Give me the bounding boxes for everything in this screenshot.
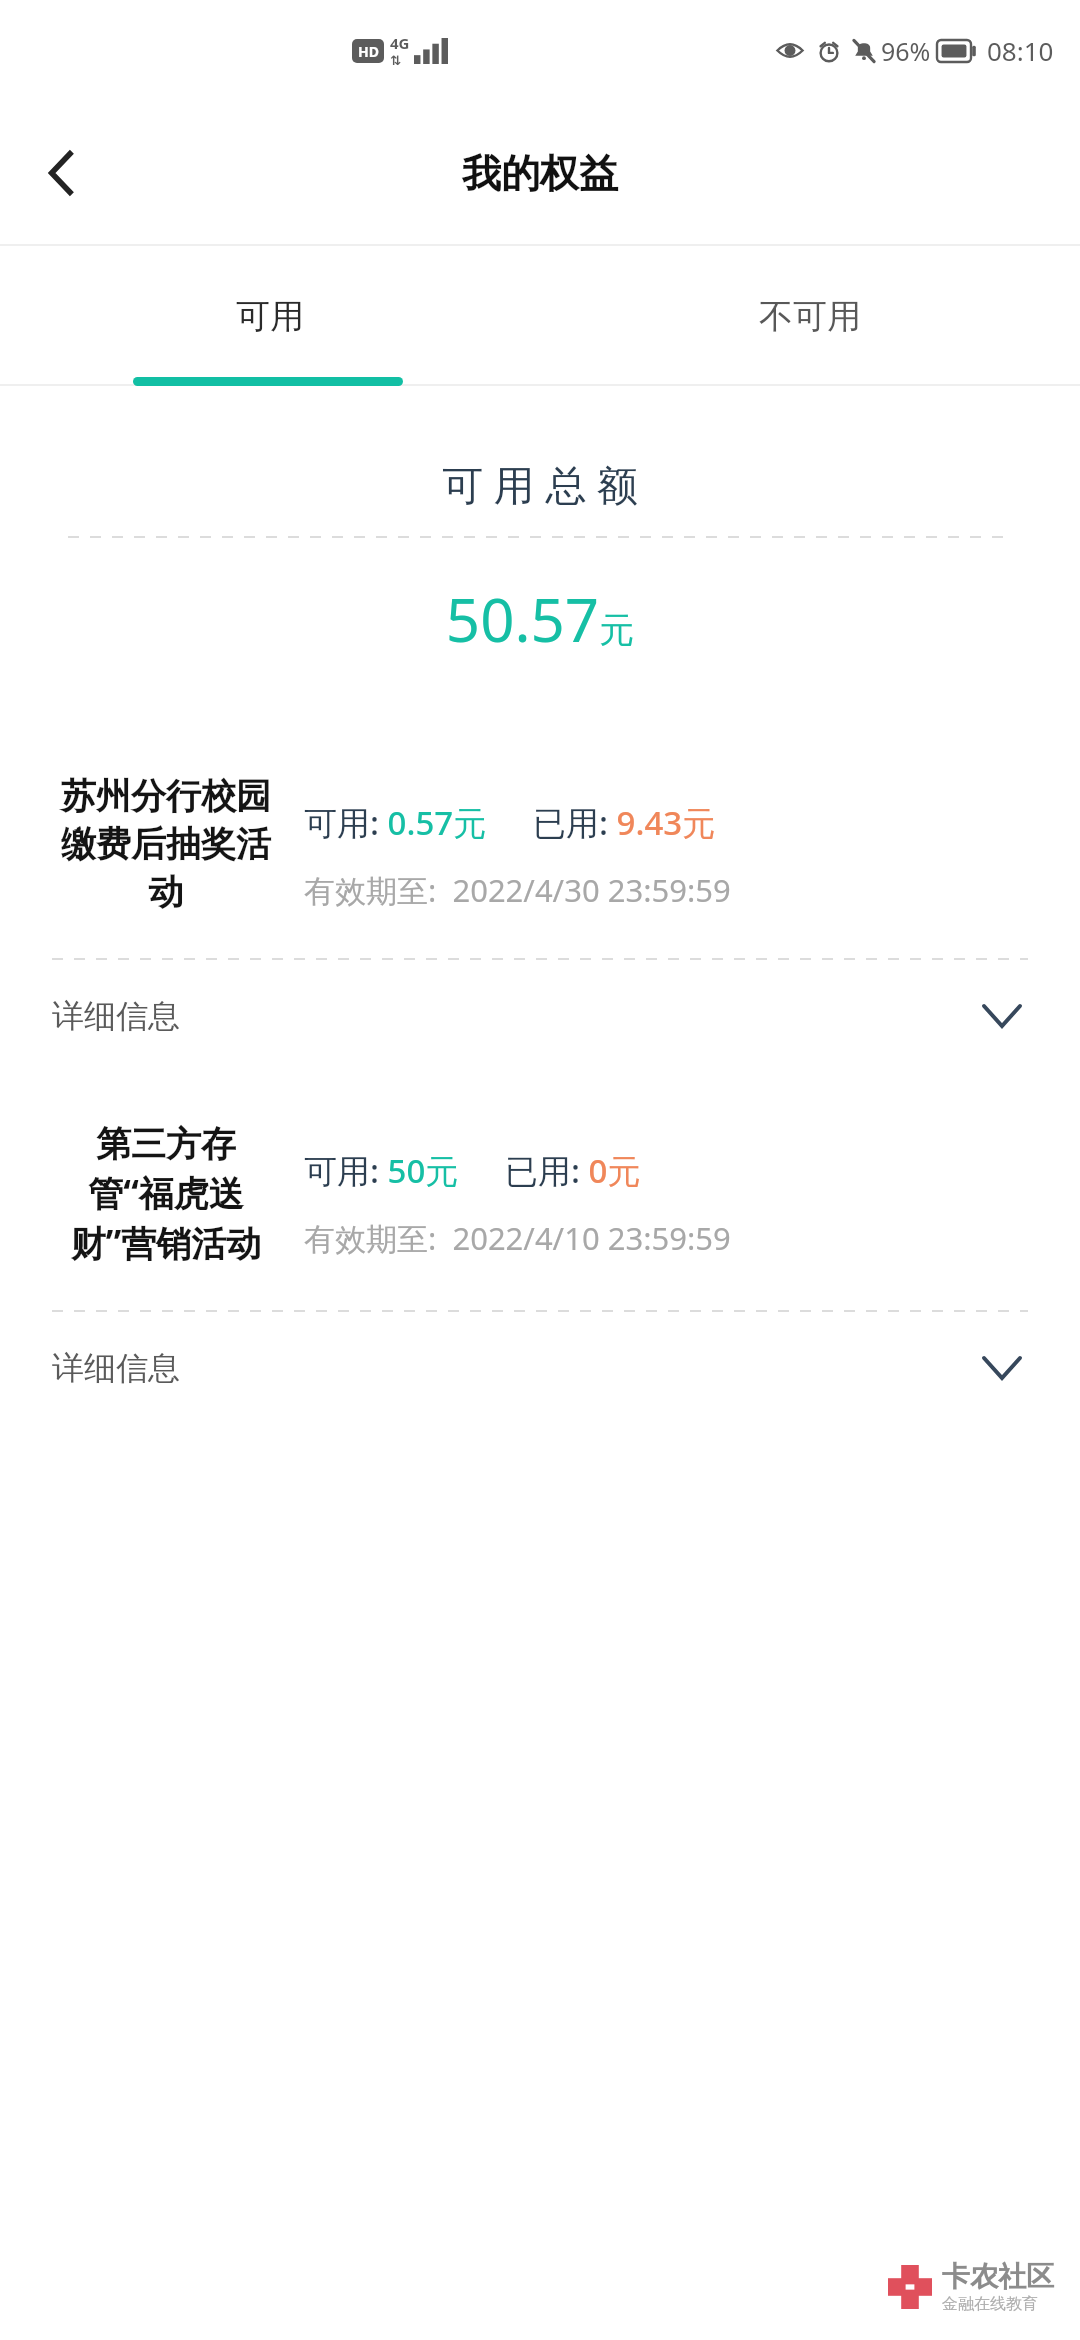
staticText: 我的权益 [462, 149, 618, 198]
other: 展开详细信息 [982, 1004, 1022, 1028]
staticText: 有效期至: 2022/4/30 23:59:59 [304, 869, 731, 911]
other: 展开详细信息 [982, 1356, 1022, 1380]
staticText: 已用: 0元 [505, 1148, 641, 1193]
button[interactable]: 不可用 [540, 246, 1080, 386]
staticText: 不可用 [759, 295, 861, 338]
staticText: 金融在线教育 [942, 2294, 1038, 2314]
button[interactable]: 返回 [18, 129, 106, 217]
staticText: 可用: 50元 [304, 1148, 459, 1193]
staticText: HD [358, 42, 379, 61]
staticText: 卡农社区 [942, 2259, 1054, 2294]
staticText: 有效期至: 2022/4/10 23:59:59 [304, 1217, 731, 1259]
staticText: 50.57元 [24, 578, 1056, 660]
staticText: 08:10 [987, 33, 1054, 68]
button[interactable]: 详细信息 [24, 960, 1056, 1072]
staticText: 可用 [236, 295, 304, 338]
staticText: 详细信息 [52, 1348, 180, 1388]
staticText: 96% [881, 34, 931, 68]
staticText: 已用: 9.43元 [533, 800, 716, 845]
staticText: 详细信息 [52, 996, 180, 1036]
staticText: 苏州分行校园 缴费后抽奖活 动 [52, 774, 280, 914]
button[interactable]: 可用 [0, 246, 540, 386]
staticText: 可用: 0.57元 [304, 800, 487, 845]
staticText: ⇅ [390, 53, 401, 68]
staticText: 4G [390, 33, 410, 53]
staticText: 可 用 总 额 [24, 456, 1056, 512]
button[interactable]: 详细信息 [24, 1312, 1056, 1424]
button[interactable]: 可 用 总 额 [24, 410, 1056, 724]
staticText: 第三方存 管“福虎送 财”营销活动 [52, 1122, 280, 1266]
